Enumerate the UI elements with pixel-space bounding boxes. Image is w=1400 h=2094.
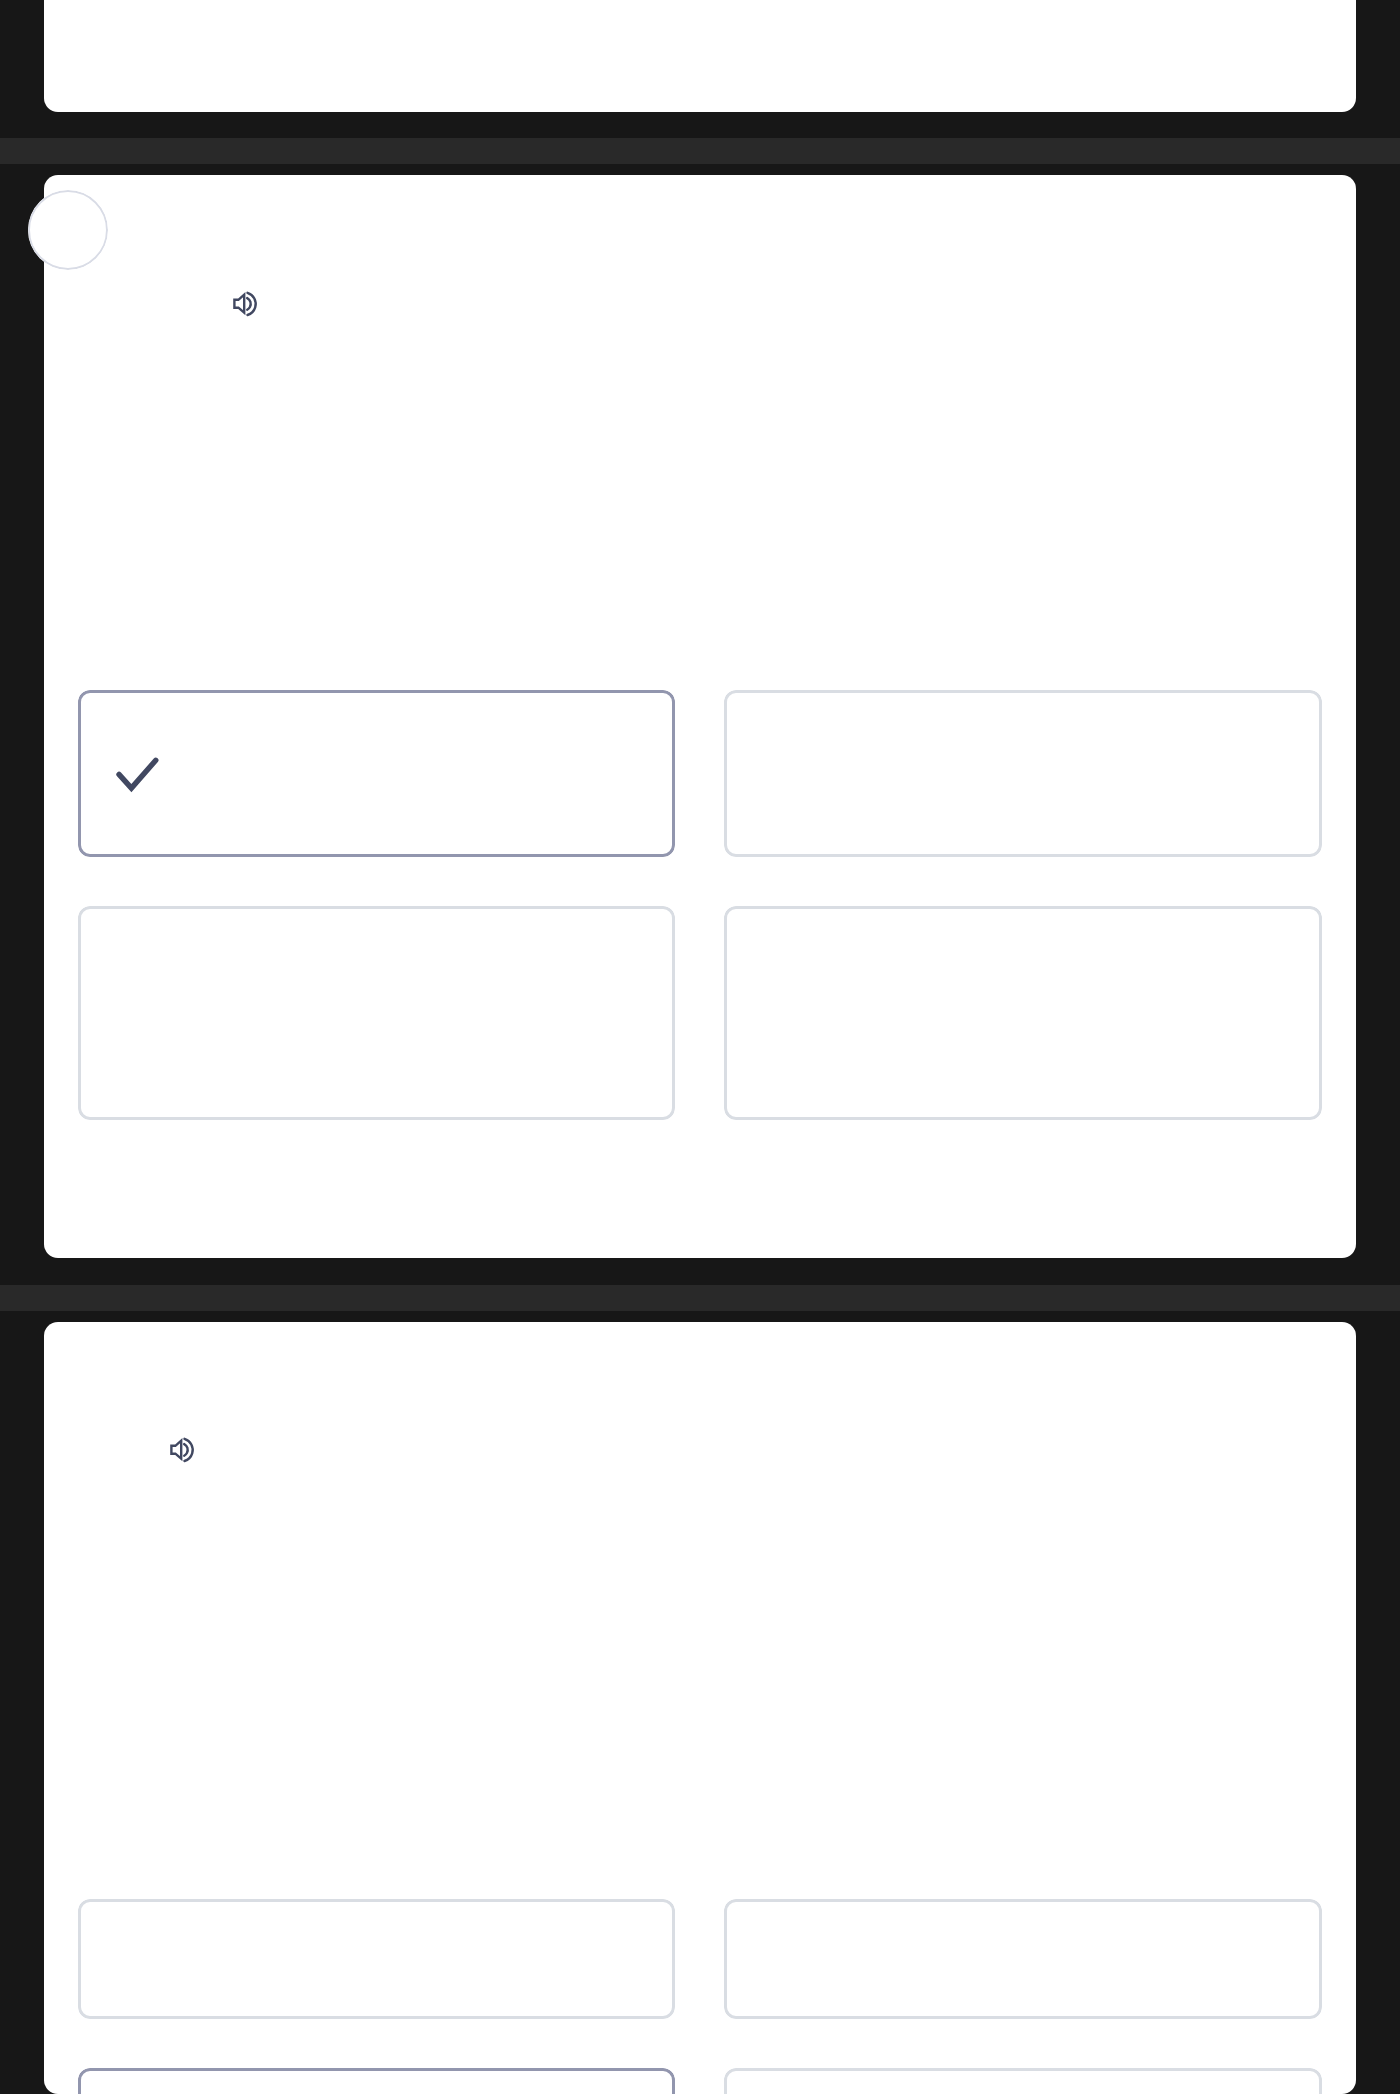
button[interactable]	[724, 906, 1322, 1120]
button[interactable]: Profile	[28, 190, 108, 270]
button[interactable]	[724, 1899, 1322, 2019]
button[interactable]: Play audio	[170, 1438, 194, 1462]
button[interactable]	[78, 906, 675, 1120]
button[interactable]	[78, 1899, 675, 2019]
button[interactable]: Play audio	[233, 292, 257, 316]
button[interactable]	[724, 690, 1322, 857]
button[interactable]	[724, 2068, 1322, 2094]
button[interactable]	[78, 690, 675, 857]
button[interactable]	[78, 2068, 675, 2094]
